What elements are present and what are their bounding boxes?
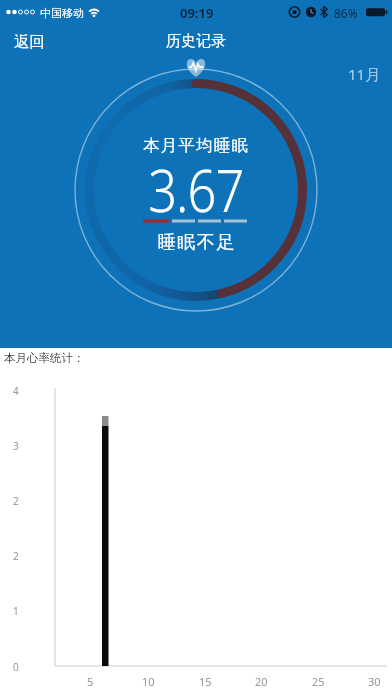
staticText: 5 [87, 674, 94, 689]
button[interactable]: 11月 [340, 60, 389, 88]
staticText: 10 [142, 674, 155, 689]
staticText: 1 [13, 604, 19, 618]
staticText: 睡眠不足 [157, 231, 235, 254]
staticText: 历史记录 [166, 32, 226, 51]
staticText: 30 [368, 674, 381, 689]
button[interactable]: 返回 [6, 28, 53, 56]
staticText: 2 [13, 549, 19, 563]
staticText: 11月 [348, 64, 381, 84]
staticText: 本月平均睡眠 [143, 135, 250, 156]
staticText: 4 [13, 384, 19, 398]
staticText: 返回 [14, 32, 45, 52]
staticText: 3.67 [148, 150, 244, 229]
staticText: 20 [255, 674, 268, 689]
staticText: 0 [13, 660, 19, 674]
staticText: 09:19 [180, 4, 214, 22]
staticText: 15 [199, 674, 212, 689]
staticText: 2 [13, 494, 19, 508]
staticText: 中国移动 [40, 6, 84, 20]
staticText: 本月心率统计： [4, 351, 85, 365]
staticText: 25 [312, 674, 325, 689]
staticText: 3 [13, 439, 19, 453]
staticText: 86% [334, 5, 358, 21]
